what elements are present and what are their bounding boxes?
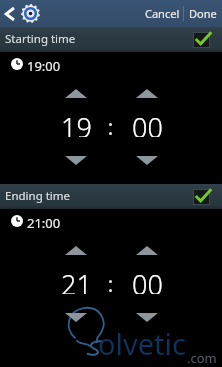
button[interactable]: Cancel xyxy=(140,0,184,27)
button[interactable]: Back xyxy=(0,0,19,27)
button[interactable]: Increase hour xyxy=(47,85,105,101)
button[interactable]: Decrease minute xyxy=(118,152,176,168)
staticText: 19 xyxy=(61,109,92,137)
staticText: Ending time xyxy=(5,188,71,204)
staticText: 21:00 xyxy=(27,214,61,228)
staticText: 19:00 xyxy=(27,57,61,71)
staticText: 21 xyxy=(61,266,92,294)
staticText: Starting time xyxy=(5,31,76,47)
staticText: olvetic xyxy=(98,324,186,363)
button[interactable]: Decrease hour xyxy=(47,309,105,325)
button[interactable]: Ending time xyxy=(0,184,222,209)
button[interactable]: Increase hour xyxy=(47,242,105,258)
staticText: 00 xyxy=(132,266,163,294)
button[interactable]: Decrease hour xyxy=(47,152,105,168)
button[interactable]: Increase minute xyxy=(118,242,176,258)
button[interactable]: Done xyxy=(184,0,222,27)
button[interactable]: Settings xyxy=(19,0,42,27)
button[interactable]: Starting time xyxy=(0,27,222,52)
button[interactable]: Decrease minute xyxy=(118,309,176,325)
staticText: Cancel xyxy=(145,6,180,21)
staticText: 00 xyxy=(132,109,163,137)
staticText: Done xyxy=(189,6,217,21)
staticText: .com xyxy=(187,349,217,367)
button[interactable]: Increase minute xyxy=(118,85,176,101)
